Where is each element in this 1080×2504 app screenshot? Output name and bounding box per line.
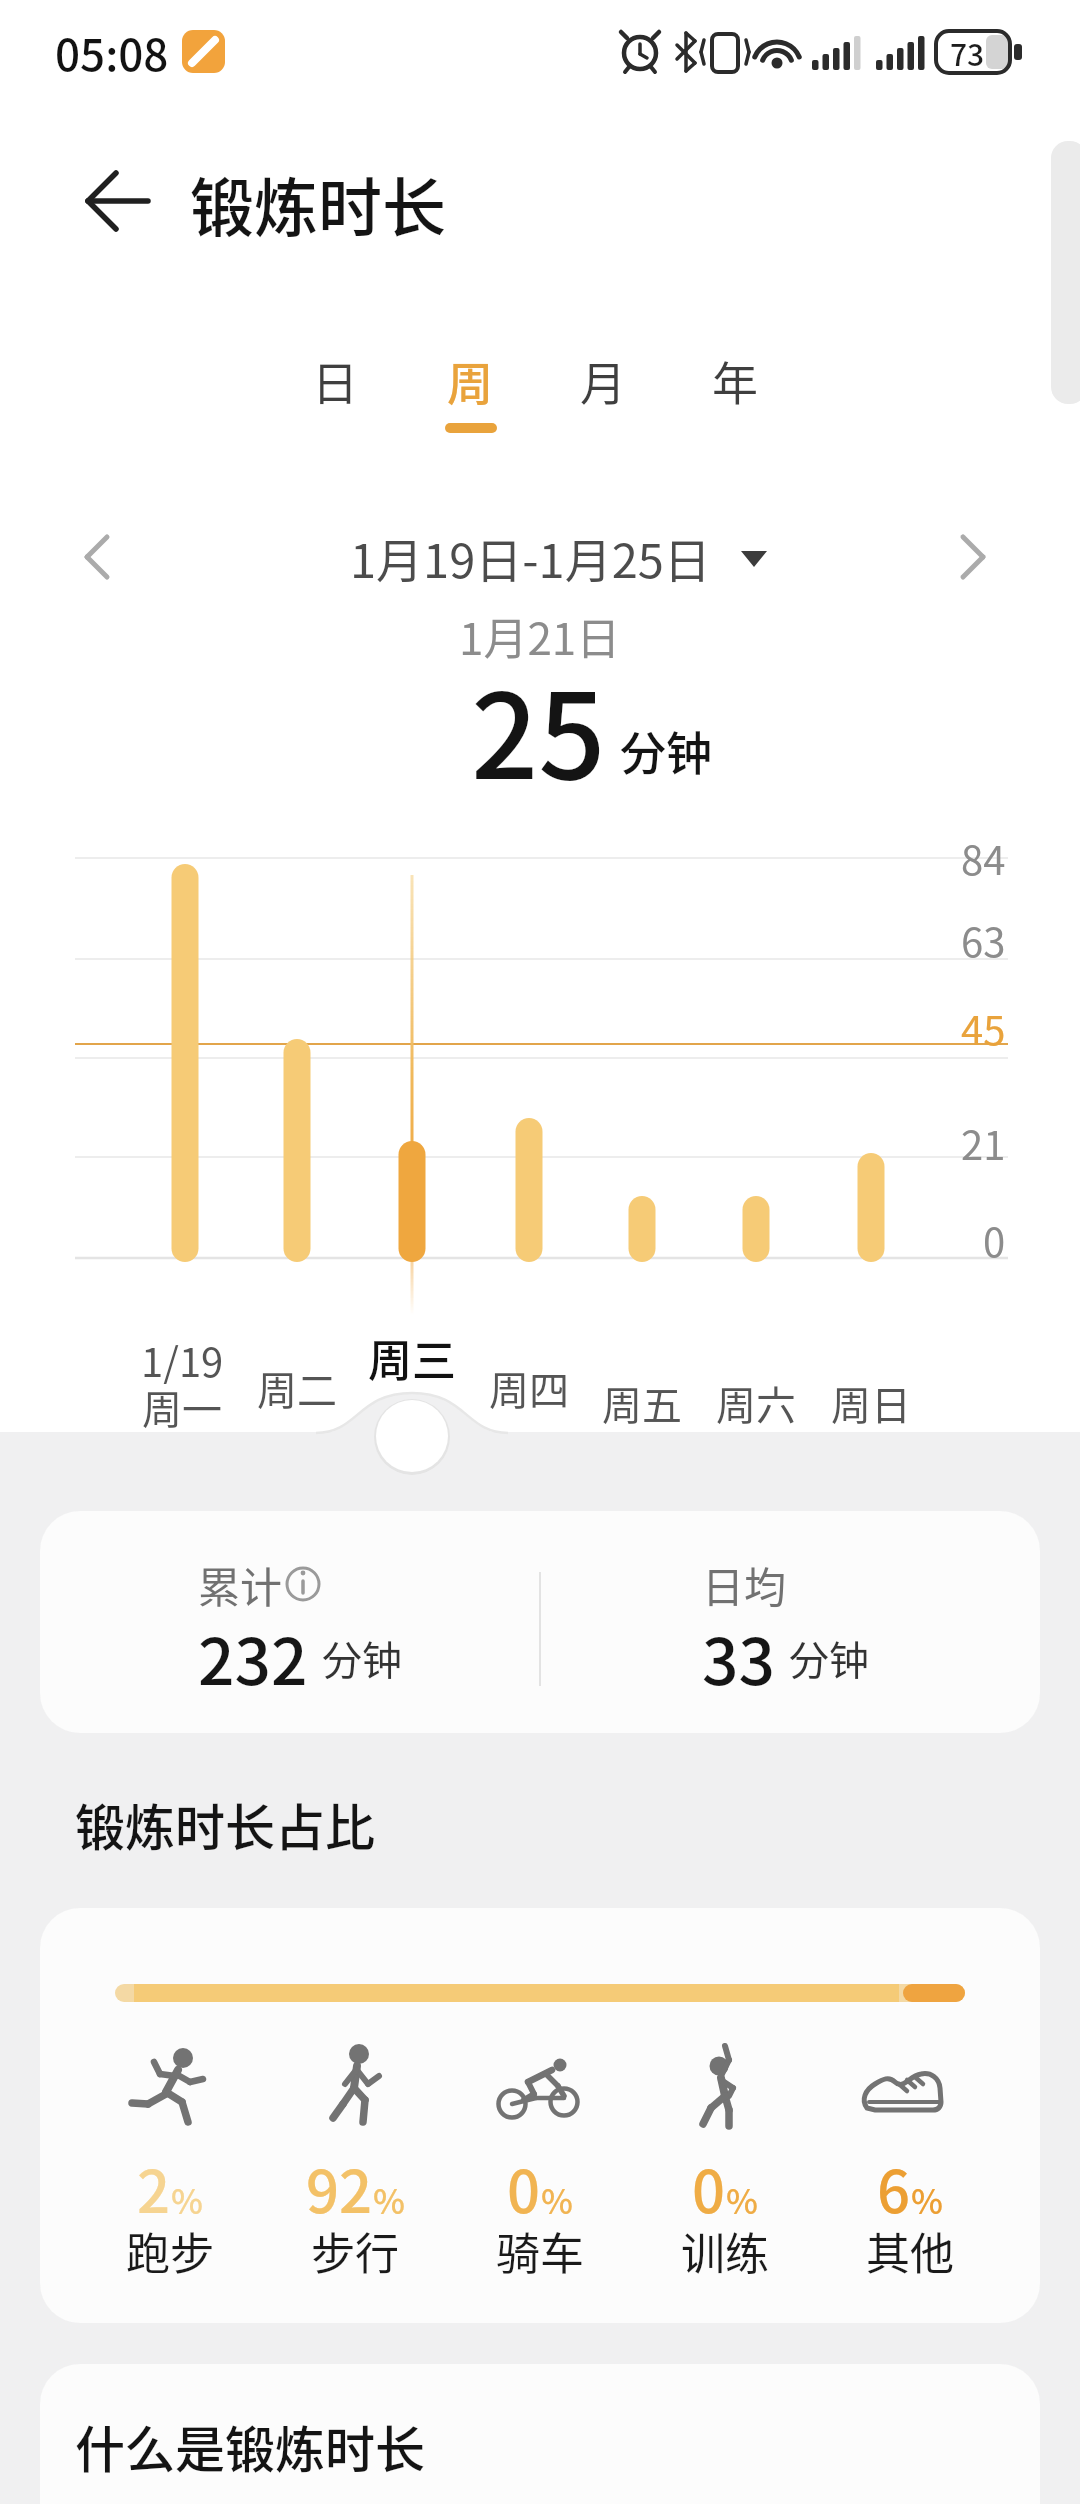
staticText: 周日 [831, 1374, 911, 1432]
staticText: 92 [306, 2146, 373, 2230]
button[interactable]: 月 [553, 330, 653, 430]
staticText: 1/19 [141, 1331, 224, 1389]
staticText: 45 [961, 999, 1006, 1057]
staticText: % [373, 2175, 405, 2224]
button[interactable] [943, 517, 1023, 597]
staticText: 21 [961, 1114, 1006, 1172]
staticText: 分钟 [620, 717, 712, 784]
button[interactable] [275, 1556, 331, 1612]
staticText: 0 [692, 2146, 726, 2230]
button[interactable]: 日 [285, 330, 385, 430]
staticText: 73 [950, 31, 985, 74]
staticText: 周 [447, 347, 493, 414]
staticText: 日均 [702, 1554, 787, 1615]
button[interactable] [40, 2364, 1040, 2504]
staticText: 骑车 [496, 2219, 584, 2283]
staticText: 25 [471, 642, 606, 782]
staticText: 日 [312, 347, 358, 414]
staticText: 锻炼时长 [190, 157, 446, 250]
staticText: 6 [877, 2146, 911, 2230]
button[interactable] [825, 2040, 995, 2290]
staticText: 周二 [257, 1359, 337, 1417]
staticText: 0 [983, 1211, 1006, 1269]
staticText: 步行 [311, 2219, 399, 2283]
button[interactable] [270, 2040, 440, 2290]
button[interactable]: 年 [685, 330, 785, 430]
staticText: 锻炼时长占比 [75, 1788, 375, 1860]
staticText: 年 [712, 347, 758, 414]
staticText: 232 [198, 1611, 308, 1704]
staticText: 什么是锻炼时长 [75, 2410, 425, 2482]
staticText: 84 [961, 829, 1006, 887]
staticText: 训练 [681, 2219, 769, 2283]
button[interactable] [57, 517, 137, 597]
staticText: 分钟 [789, 1629, 869, 1687]
button[interactable] [377, 1402, 447, 1472]
staticText: 其他 [866, 2219, 954, 2283]
staticText: 05:08 [55, 20, 169, 84]
staticText: 周一 [142, 1378, 222, 1436]
staticText: 月 [580, 347, 626, 414]
button[interactable]: 1月19日-1月25日 [230, 487, 830, 627]
button[interactable] [40, 1908, 1040, 2323]
staticText: 33 [702, 1611, 775, 1704]
staticText: 分钟 [322, 1629, 402, 1687]
staticText: 1月21日 [459, 604, 621, 668]
button[interactable] [60, 155, 170, 250]
button[interactable] [640, 2040, 810, 2290]
button[interactable] [85, 2040, 255, 2290]
staticText: % [541, 2175, 573, 2224]
staticText: 0 [507, 2146, 541, 2230]
staticText: 63 [961, 911, 1006, 969]
staticText: 1月19日-1月25日 [350, 523, 711, 591]
staticText: 周六 [716, 1374, 796, 1432]
staticText: % [171, 2175, 203, 2224]
button[interactable]: 周 [420, 330, 520, 430]
button[interactable] [455, 2040, 625, 2290]
staticText: 2 [137, 2146, 171, 2230]
staticText: % [726, 2175, 758, 2224]
staticText: 累计 [198, 1554, 283, 1615]
staticText: 周四 [489, 1359, 569, 1417]
staticText: 周五 [602, 1374, 682, 1432]
button[interactable] [40, 1511, 1040, 1733]
staticText: 跑步 [126, 2219, 214, 2283]
staticText: 周三 [368, 1326, 456, 1390]
staticText: % [911, 2175, 943, 2224]
